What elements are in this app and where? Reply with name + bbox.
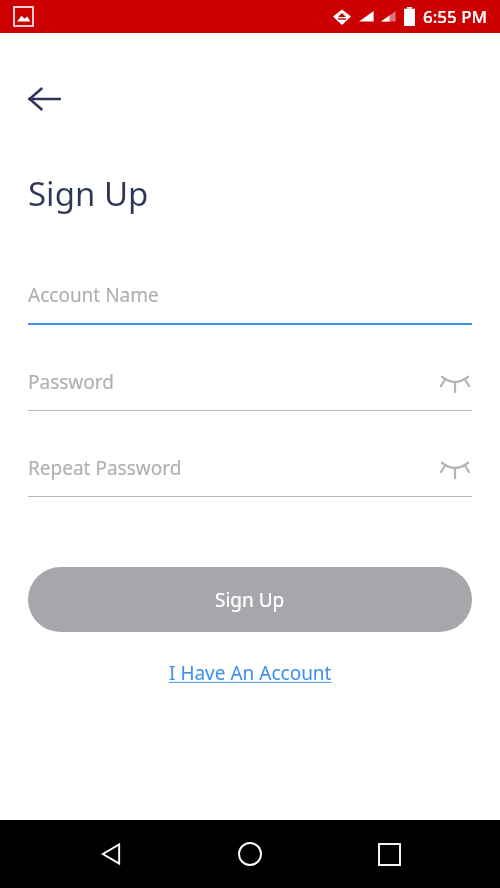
button[interactable]: Show password [438, 451, 472, 485]
staticText: 6:55 PM [423, 5, 488, 28]
button[interactable]: Back [14, 69, 74, 129]
button[interactable]: Recent apps [361, 826, 417, 882]
staticText: Account Name [28, 282, 472, 308]
button[interactable]: I Have An Account [159, 654, 342, 692]
button[interactable]: Home [222, 826, 278, 882]
staticText: Sign Up [215, 587, 285, 613]
button[interactable]: Back [83, 826, 139, 882]
staticText: Repeat Password [28, 455, 438, 481]
button[interactable]: Account Name [28, 276, 472, 325]
button[interactable]: Repeat Password [28, 449, 472, 497]
staticText: Password [28, 369, 438, 395]
staticText: Sign Up [28, 171, 149, 216]
button[interactable]: Show password [438, 365, 472, 399]
staticText: I Have An Account [169, 660, 332, 686]
button[interactable]: Password [28, 363, 472, 411]
button[interactable]: Sign Up [28, 567, 472, 632]
